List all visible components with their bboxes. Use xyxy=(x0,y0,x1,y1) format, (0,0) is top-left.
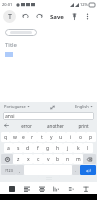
staticText: q xyxy=(4,134,8,141)
staticText: Save xyxy=(50,13,64,21)
button[interactable]: Portuguese xyxy=(4,104,30,109)
button[interactable]: Period xyxy=(72,165,80,175)
button[interactable]: b xyxy=(53,154,63,164)
staticText: w xyxy=(13,134,17,141)
staticText: n xyxy=(66,156,70,163)
button[interactable]: s xyxy=(13,143,23,153)
button[interactable]: x xyxy=(23,154,33,164)
button[interactable]: Backspace xyxy=(83,154,96,164)
button[interactable]: ?123 xyxy=(1,165,16,175)
button[interactable]: Text formatting xyxy=(3,10,16,23)
staticText: ?123 xyxy=(5,168,13,173)
staticText: z xyxy=(17,156,20,163)
button[interactable]: j xyxy=(63,143,73,153)
button[interactable]: error xyxy=(12,121,41,130)
button[interactable]: Shift xyxy=(1,154,13,164)
staticText: o xyxy=(79,134,83,141)
button[interactable]: Undo xyxy=(20,11,31,22)
button[interactable]: Insert xyxy=(80,183,91,194)
button[interactable]: e xyxy=(19,132,28,142)
button[interactable]: r xyxy=(28,132,37,142)
button[interactable]: g xyxy=(43,143,53,153)
staticText: print xyxy=(78,123,89,129)
button[interactable]: Line spacing xyxy=(65,183,76,194)
button[interactable]: Save xyxy=(48,11,66,23)
staticText: g xyxy=(46,145,50,152)
staticText: 20:01 xyxy=(2,2,13,7)
staticText: x xyxy=(27,156,30,163)
button[interactable]: ansi xyxy=(3,112,94,120)
button[interactable]: a xyxy=(4,143,13,153)
button[interactable]: Comma xyxy=(16,165,24,175)
button[interactable]: Text size xyxy=(50,183,61,194)
button[interactable]: q xyxy=(1,132,10,142)
staticText: k xyxy=(77,145,80,152)
staticText: b xyxy=(56,156,60,163)
button[interactable]: Align left xyxy=(21,183,32,194)
button[interactable]: v xyxy=(43,154,53,164)
staticText: i xyxy=(70,134,72,141)
staticText: a xyxy=(7,145,10,152)
staticText: s xyxy=(17,145,20,152)
button[interactable]: Redo xyxy=(34,11,45,22)
button[interactable]: h xyxy=(53,143,63,153)
staticText: f xyxy=(37,145,39,152)
button[interactable]: i xyxy=(66,132,76,142)
staticText: r xyxy=(31,134,34,141)
button[interactable]: p xyxy=(86,132,96,142)
staticText: d xyxy=(26,145,30,152)
button[interactable]: c xyxy=(33,154,43,164)
staticText: Title xyxy=(5,41,17,49)
button[interactable] xyxy=(5,29,37,36)
button[interactable]: Align center xyxy=(36,183,47,194)
staticText: Portuguese xyxy=(4,104,26,109)
button[interactable]: o xyxy=(76,132,86,142)
staticText: j xyxy=(67,145,69,152)
button[interactable]: u xyxy=(56,132,66,142)
staticText: c xyxy=(37,156,40,163)
button[interactable]: k xyxy=(73,143,83,153)
button[interactable]: d xyxy=(23,143,33,153)
staticText: u xyxy=(59,134,63,141)
staticText: h xyxy=(56,145,60,152)
staticText: . xyxy=(75,168,77,173)
button[interactable]: Enter xyxy=(80,165,96,175)
button[interactable]: Attach xyxy=(69,11,80,22)
staticText: T xyxy=(8,12,12,22)
staticText: ansi xyxy=(5,113,15,120)
button[interactable]: More options xyxy=(82,11,93,22)
staticText: t xyxy=(41,134,43,141)
button[interactable]: l xyxy=(83,143,93,153)
staticText: another xyxy=(47,123,64,129)
button[interactable]: z xyxy=(13,154,23,164)
button[interactable]: m xyxy=(73,154,83,164)
staticText: English xyxy=(75,104,89,109)
button[interactable]: f xyxy=(33,143,43,153)
button[interactable]: n xyxy=(63,154,73,164)
staticText: l xyxy=(87,145,89,152)
staticText: e xyxy=(22,134,25,141)
button[interactable]: English xyxy=(75,104,93,109)
button[interactable]: print xyxy=(69,121,97,130)
button[interactable]: another xyxy=(41,121,69,130)
staticText: p xyxy=(89,134,93,141)
staticText: error xyxy=(21,123,32,129)
button[interactable]: t xyxy=(37,132,46,142)
staticText: , xyxy=(19,168,21,173)
staticText: 12% xyxy=(80,2,88,7)
button[interactable]: Format color xyxy=(6,183,17,194)
button[interactable]: Back xyxy=(0,121,12,130)
button[interactable]: Swap languages xyxy=(48,103,56,111)
staticText: v xyxy=(47,156,50,163)
staticText: m xyxy=(76,156,81,163)
button[interactable]: w xyxy=(10,132,19,142)
staticText: y xyxy=(50,134,53,141)
button[interactable]: y xyxy=(46,132,56,142)
